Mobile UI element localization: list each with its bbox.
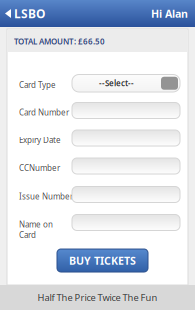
staticText: Issue Number: [19, 191, 73, 202]
staticText: CCNumber: [19, 162, 60, 173]
staticText: Name on Card: [19, 219, 53, 240]
staticText: Card Type: [19, 79, 56, 90]
staticText: Hi Alan: [151, 6, 188, 21]
staticText: BUY TICKETS: [69, 253, 136, 268]
staticText: TOTAL AMOUNT: £66.50: [14, 36, 105, 47]
button[interactable]: Hi Alan: [142, 0, 195, 27]
button[interactable]: --Select--: [72, 74, 180, 92]
staticText: --Select--: [99, 78, 134, 88]
staticText: Card Number: [19, 107, 69, 118]
button[interactable]: BUY TICKETS: [57, 249, 148, 272]
staticText: Expiry Date: [19, 134, 61, 145]
staticText: Half The Price Twice The Fun: [37, 291, 157, 304]
button[interactable]: LSBO: [0, 0, 51, 27]
staticText: LSBO: [14, 5, 45, 21]
